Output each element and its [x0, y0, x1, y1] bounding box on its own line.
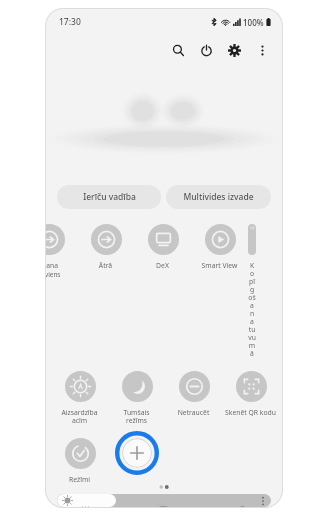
button[interactable]: Power	[194, 38, 218, 62]
staticText: 17:30	[59, 16, 81, 28]
staticText: Neviens	[46, 270, 77, 279]
button[interactable]: Skenēt QR kodu	[222, 364, 279, 417]
button[interactable]: ošana	[46, 217, 77, 279]
button[interactable]: More options	[250, 38, 274, 62]
staticText: Smart View	[191, 261, 248, 270]
button[interactable]: Settings	[222, 38, 246, 62]
button[interactable]: Ierīču vadība	[57, 185, 161, 209]
staticText: Kopīgošana tuvumā	[248, 261, 256, 358]
staticText: Režīmi	[51, 475, 108, 484]
staticText: DeX	[134, 261, 191, 270]
button[interactable]: Add tile	[108, 431, 165, 475]
staticText: 100%	[243, 17, 264, 28]
staticText: ošana	[46, 261, 77, 270]
button[interactable]: Multivides izvade	[166, 185, 271, 209]
staticText: Aizsardzība acīm	[51, 408, 108, 425]
staticText: Multivides izvade	[183, 191, 254, 203]
button[interactable]: Ātrā	[77, 217, 134, 270]
button[interactable]: Aizsardzība acīm	[51, 364, 108, 425]
button[interactable]: Kopīgošana tuvumā	[248, 217, 256, 358]
staticText: Tumšais režīms	[108, 408, 165, 425]
button[interactable]: Režīmi	[51, 431, 108, 484]
staticText: Netraucēt	[165, 408, 222, 417]
staticText: Ātrā	[77, 261, 134, 270]
staticText: Ierīču vadība	[83, 191, 136, 203]
staticText: Skenēt QR kodu	[222, 408, 279, 417]
button[interactable]: Smart View	[191, 217, 248, 270]
button[interactable]: Brightness	[57, 494, 271, 507]
button[interactable]: Tumšais režīms	[108, 364, 165, 425]
button[interactable]: DeX	[134, 217, 191, 270]
button[interactable]: Netraucēt	[165, 364, 222, 417]
button[interactable]: Search	[166, 38, 190, 62]
